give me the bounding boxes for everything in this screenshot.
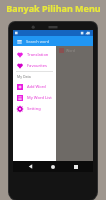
staticText: My Data xyxy=(17,74,31,79)
button[interactable]: Translation xyxy=(13,49,56,60)
staticText: Banyak Pilihan Menu xyxy=(6,2,101,14)
staticText: Add Word xyxy=(27,84,46,89)
button[interactable]: My Word List xyxy=(13,92,56,103)
staticText: Favourites xyxy=(27,63,48,68)
button[interactable]: Recent apps xyxy=(70,161,82,172)
staticText: Setting xyxy=(27,106,41,111)
button[interactable]: Add Word xyxy=(13,81,56,92)
staticText: Word xyxy=(66,48,75,53)
button[interactable]: Setting xyxy=(13,103,56,114)
button[interactable]: Favourites xyxy=(13,60,56,71)
button[interactable]: Open navigation drawer xyxy=(15,37,23,45)
staticText: Translation xyxy=(27,52,49,57)
button[interactable]: Back xyxy=(24,161,36,172)
button[interactable]: Home xyxy=(47,161,59,172)
staticText: My Word List xyxy=(27,95,52,100)
staticText: Search word xyxy=(26,39,50,44)
